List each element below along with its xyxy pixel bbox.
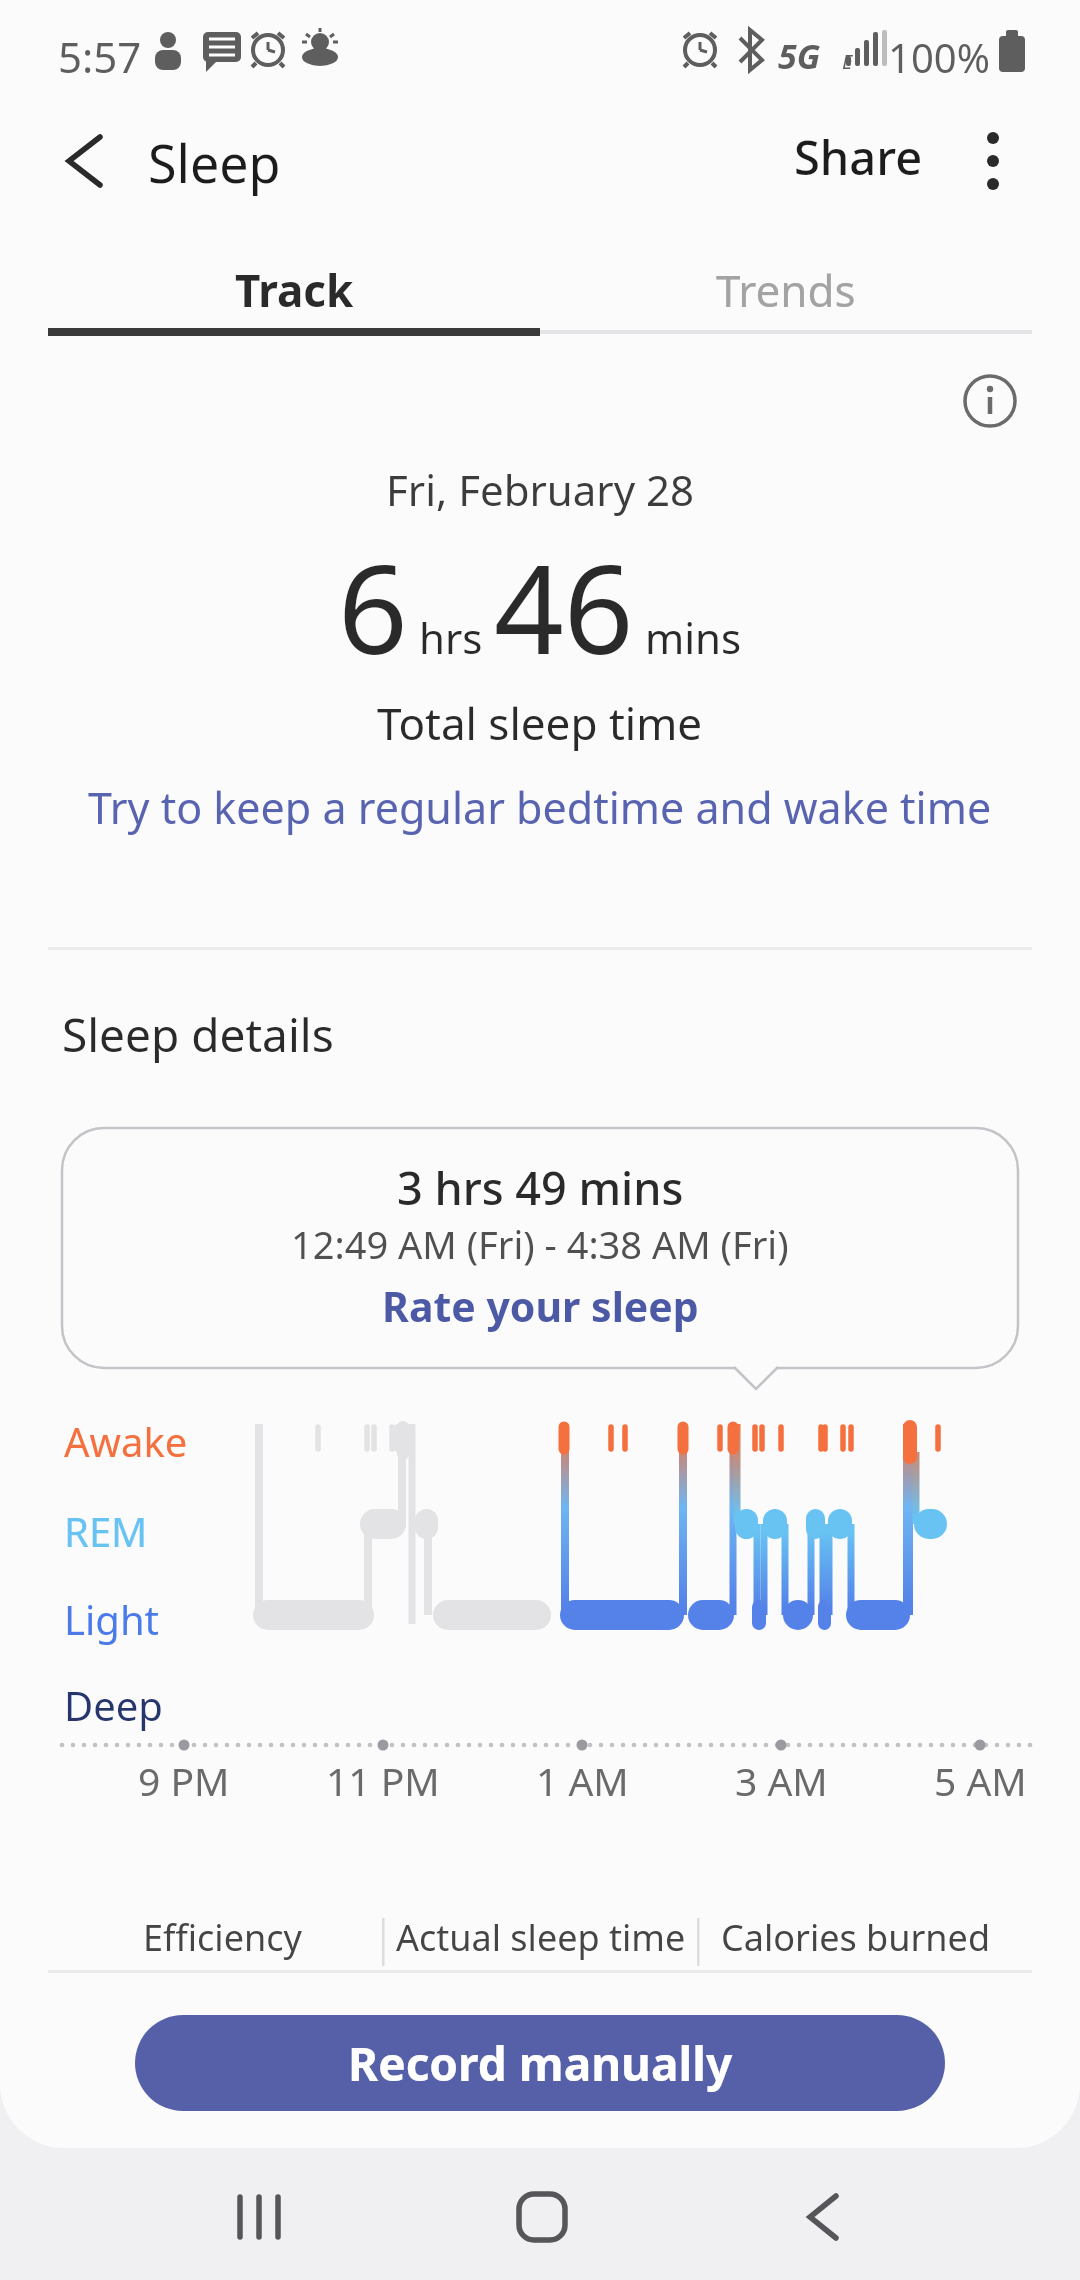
staticText: 3 AM <box>735 1754 828 1807</box>
staticText: Try to keep a regular bedtime and wake t… <box>88 778 992 837</box>
button[interactable] <box>200 2170 320 2270</box>
staticText: Efficiency <box>143 1913 302 1962</box>
staticText: Awake <box>64 1414 188 1468</box>
staticText: Rate your sleep <box>382 1278 699 1334</box>
staticText: hrs <box>408 609 494 666</box>
staticText: REM <box>64 1504 148 1558</box>
staticText: 5G <box>778 33 821 79</box>
staticText: Trends <box>716 260 856 320</box>
staticText: 6 <box>338 524 408 690</box>
staticText: Track <box>235 260 354 320</box>
button[interactable] <box>62 1128 1018 1368</box>
staticText: 3 hrs 49 mins <box>397 1157 684 1218</box>
staticText: Sleep details <box>62 1003 334 1066</box>
staticText: E <box>842 48 853 75</box>
button[interactable]: Actual sleep time <box>371 1913 711 1962</box>
staticText: 5:57 <box>58 28 142 85</box>
staticText: Total sleep time <box>377 693 703 753</box>
staticText: 100% <box>888 30 990 84</box>
staticText: Light <box>64 1592 160 1646</box>
staticText: Actual sleep time <box>396 1913 686 1962</box>
button[interactable]: Record manually <box>135 2015 945 2111</box>
staticText: 46 <box>494 524 634 690</box>
staticText: Fri, February 28 <box>386 461 695 518</box>
staticText: Calories burned <box>721 1913 991 1962</box>
button[interactable]: Track <box>48 248 540 336</box>
button[interactable] <box>960 125 1026 191</box>
staticText: Deep <box>64 1678 163 1732</box>
staticText: 1 AM <box>536 1754 629 1807</box>
button[interactable]: Calories burned <box>686 1913 1026 1962</box>
staticText: Record manually <box>348 2032 733 2095</box>
staticText: mins <box>634 609 742 666</box>
button[interactable]: Trends <box>540 248 1032 336</box>
button[interactable]: Share <box>780 125 937 189</box>
button[interactable]: Efficiency <box>52 1913 392 1962</box>
button[interactable] <box>764 2170 884 2270</box>
staticText: 5 AM <box>934 1754 1027 1807</box>
button[interactable] <box>482 2170 602 2270</box>
staticText: 9 PM <box>138 1754 230 1807</box>
staticText: Share <box>794 125 923 189</box>
staticText: 11 PM <box>326 1754 440 1807</box>
button[interactable] <box>48 122 120 194</box>
staticText: Sleep <box>148 127 281 198</box>
staticText: 12:49 AM (Fri) - 4:38 AM (Fri) <box>291 1218 789 1270</box>
